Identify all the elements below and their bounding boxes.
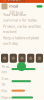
staticText: Protein	[1, 64, 9, 74]
button[interactable]: Category	[36, 54, 43, 63]
staticText: Fat	[1, 88, 6, 93]
staticText: Nutri	[8, 0, 21, 2]
staticText: Morning meal	[9, 0, 24, 9]
button[interactable]: Category	[10, 54, 17, 63]
staticText: Your nutrition summary for today	[3, 12, 37, 22]
button[interactable]: Morning meal	[0, 3, 44, 10]
button[interactable]: Category	[1, 54, 8, 63]
staticText: Carbs	[1, 76, 9, 86]
button[interactable]: Category	[18, 54, 26, 63]
staticText: Keep a balanced plate each day	[3, 35, 39, 46]
staticText: 320 kcal	[9, 9, 23, 15]
staticText: Fibre	[1, 95, 10, 100]
staticText: Protein, carbs and fats tracked	[3, 23, 41, 34]
button[interactable]: Add entry	[17, 62, 26, 71]
button[interactable]: Category	[27, 54, 34, 63]
